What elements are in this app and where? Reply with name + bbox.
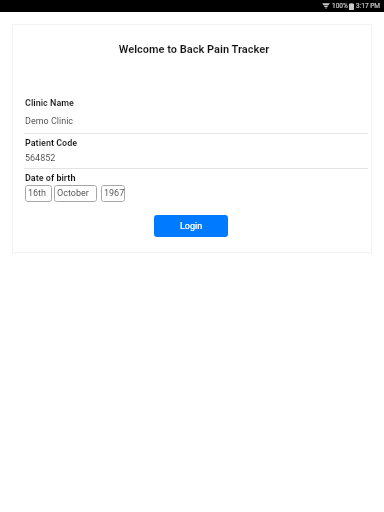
- staticText: Clinic Name: [25, 98, 74, 109]
- button[interactable]: Clinic Name: [24, 92, 368, 132]
- other: Wi-Fi: [322, 3, 330, 9]
- staticText: Welcome to Back Pain Tracker: [14, 43, 374, 56]
- button[interactable]: 1967: [101, 185, 125, 202]
- staticText: 16th: [28, 188, 47, 199]
- button[interactable]: October: [54, 185, 97, 202]
- staticText: October: [57, 188, 89, 199]
- staticText: 564852: [25, 153, 56, 164]
- other: Battery: [349, 3, 354, 10]
- staticText: 3:17 PM: [356, 2, 380, 10]
- staticText: Patient Code: [25, 138, 78, 149]
- staticText: Date of birth: [25, 173, 76, 184]
- button[interactable]: 16th: [25, 185, 52, 202]
- staticText: Demo Clinic: [25, 116, 74, 127]
- staticText: 100%: [332, 2, 348, 10]
- button[interactable]: Login: [154, 215, 228, 237]
- staticText: 1967: [104, 188, 125, 199]
- button[interactable]: Patient Code: [24, 132, 368, 172]
- staticText: Login: [180, 221, 203, 232]
